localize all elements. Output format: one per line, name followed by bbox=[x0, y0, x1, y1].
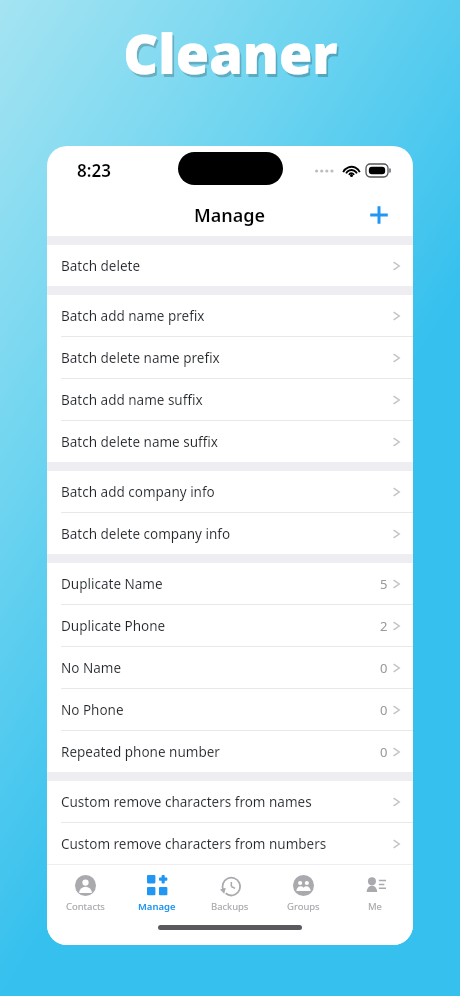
button[interactable]: Batch delete name prefix bbox=[47, 337, 413, 378]
staticText: Cleaner bbox=[123, 16, 338, 90]
button[interactable]: Backups bbox=[195, 865, 265, 923]
staticText: Manage bbox=[194, 203, 266, 228]
staticText: Backups bbox=[211, 900, 249, 913]
button[interactable]: Batch delete name suffix bbox=[47, 421, 413, 462]
button[interactable]: Repeated phone number bbox=[47, 731, 413, 772]
staticText: Groups bbox=[287, 900, 320, 913]
button[interactable]: No Phone bbox=[47, 689, 413, 730]
button[interactable]: Add bbox=[359, 195, 399, 235]
staticText: No Phone bbox=[61, 701, 380, 719]
staticText: Batch delete company info bbox=[61, 525, 392, 543]
button[interactable]: Me bbox=[340, 865, 410, 923]
button[interactable]: No Name bbox=[47, 647, 413, 688]
staticText: 8:23 bbox=[77, 159, 111, 182]
staticText: 0 bbox=[380, 743, 388, 761]
button[interactable]: Duplicate Phone bbox=[47, 605, 413, 646]
staticText: Me bbox=[368, 900, 382, 913]
button[interactable]: Custom remove characters from numbers bbox=[47, 823, 413, 864]
staticText: Batch add company info bbox=[61, 483, 392, 501]
staticText: Custom remove characters from names bbox=[61, 793, 392, 811]
staticText: Batch add name prefix bbox=[61, 307, 392, 325]
staticText: 2 bbox=[380, 617, 388, 635]
button[interactable]: Batch delete company info bbox=[47, 513, 413, 554]
button[interactable]: Batch add company info bbox=[47, 471, 413, 512]
button[interactable]: Manage bbox=[122, 865, 192, 923]
staticText: No Name bbox=[61, 659, 380, 677]
staticText: 5 bbox=[380, 575, 388, 593]
staticText: Batch delete name prefix bbox=[61, 349, 392, 367]
staticText: Batch delete bbox=[61, 257, 392, 275]
staticText: Cleaner bbox=[125, 19, 340, 93]
staticText: Contacts bbox=[66, 900, 105, 913]
button[interactable]: Batch add name suffix bbox=[47, 379, 413, 420]
button[interactable]: Contacts bbox=[50, 865, 120, 923]
button[interactable]: Groups bbox=[268, 865, 338, 923]
staticText: Custom remove characters from numbers bbox=[61, 835, 392, 853]
staticText: Batch delete name suffix bbox=[61, 433, 392, 451]
staticText: 0 bbox=[380, 701, 388, 719]
button[interactable]: Batch add name prefix bbox=[47, 295, 413, 336]
staticText: Duplicate Phone bbox=[61, 617, 380, 635]
button[interactable]: Custom remove characters from names bbox=[47, 781, 413, 822]
staticText: 0 bbox=[380, 659, 388, 677]
staticText: Duplicate Name bbox=[61, 575, 380, 593]
staticText: Repeated phone number bbox=[61, 743, 380, 761]
button[interactable]: Duplicate Name bbox=[47, 563, 413, 604]
staticText: Manage bbox=[138, 900, 176, 913]
button[interactable]: Batch delete bbox=[47, 245, 413, 286]
staticText: Batch add name suffix bbox=[61, 391, 392, 409]
